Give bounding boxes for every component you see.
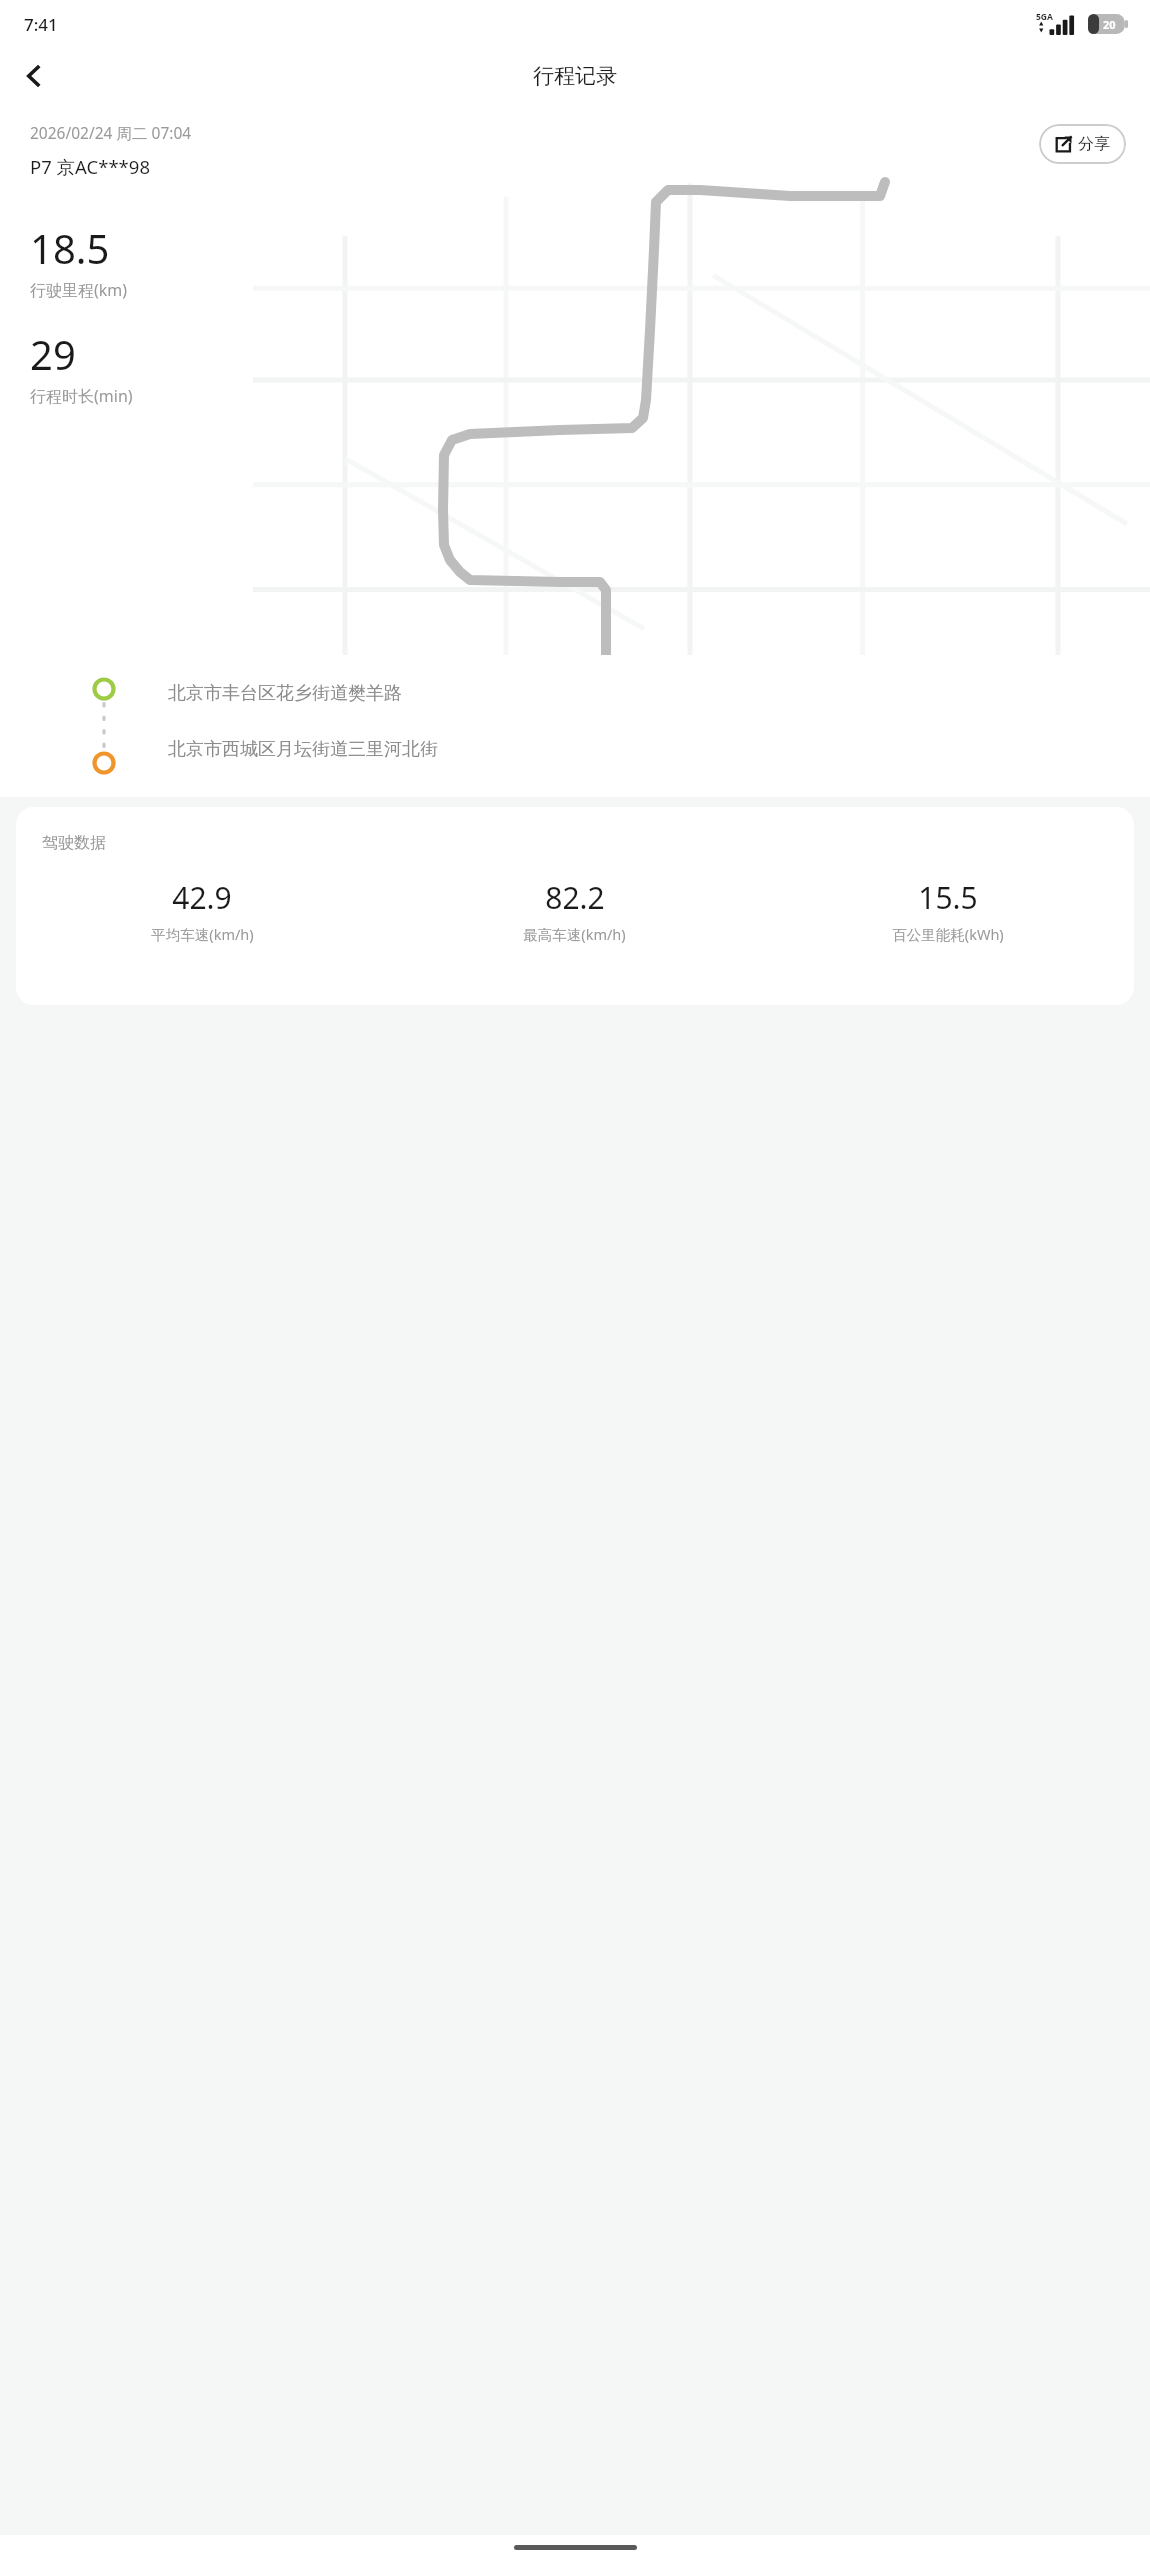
staticText: 分享 [1078,134,1110,154]
staticText: 7:41 [24,13,58,36]
staticText: 百公里能耗(kWh) [892,924,1004,944]
staticText: 驾驶数据 [42,833,106,853]
staticText: 82.2 [545,877,605,918]
staticText: 北京市西城区月坛街道三里河北街 [168,738,438,761]
staticText: 行驶里程(km) [30,279,128,301]
staticText: 20 [1103,17,1116,32]
staticText: 平均车速(km/h) [151,924,254,944]
button[interactable]: 分享 [1039,124,1126,164]
staticText: P7 京AC***98 [30,154,150,179]
staticText: 15.5 [918,877,978,918]
staticText: 42.9 [172,877,232,918]
button[interactable]: 驾驶数据 [16,807,1134,1005]
staticText: 5GA [1036,11,1053,23]
staticText: 最高车速(km/h) [523,924,626,944]
staticText: 29 [30,327,76,381]
staticText: 行程记录 [533,63,617,89]
staticText: 北京市丰台区花乡街道樊羊路 [168,682,402,705]
staticText: 18.5 [30,221,110,275]
button[interactable]: Back [8,50,60,102]
button[interactable]: 北京市西城区月坛街道三里河北街 [168,721,1126,777]
staticText: 2026/02/24 周二 07:04 [30,122,192,143]
button[interactable]: 北京市丰台区花乡街道樊羊路 [168,665,1126,721]
staticText: 行程时长(min) [30,385,133,407]
